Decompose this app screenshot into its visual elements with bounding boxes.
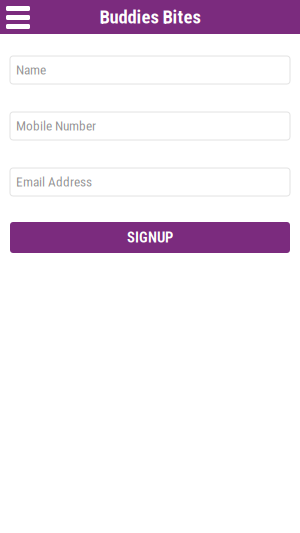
button[interactable]: SIGNUP [10, 222, 290, 253]
staticText: SIGNUP [127, 229, 173, 246]
button[interactable]: Email Address [10, 168, 290, 196]
staticText: Buddies Bites [99, 6, 200, 28]
button[interactable]: Menu [0, 0, 42, 34]
staticText: Mobile Number [16, 118, 96, 134]
staticText: Name [16, 62, 46, 78]
button[interactable]: Mobile Number [10, 112, 290, 140]
button[interactable]: Name [10, 56, 290, 84]
staticText: Email Address [16, 174, 92, 190]
